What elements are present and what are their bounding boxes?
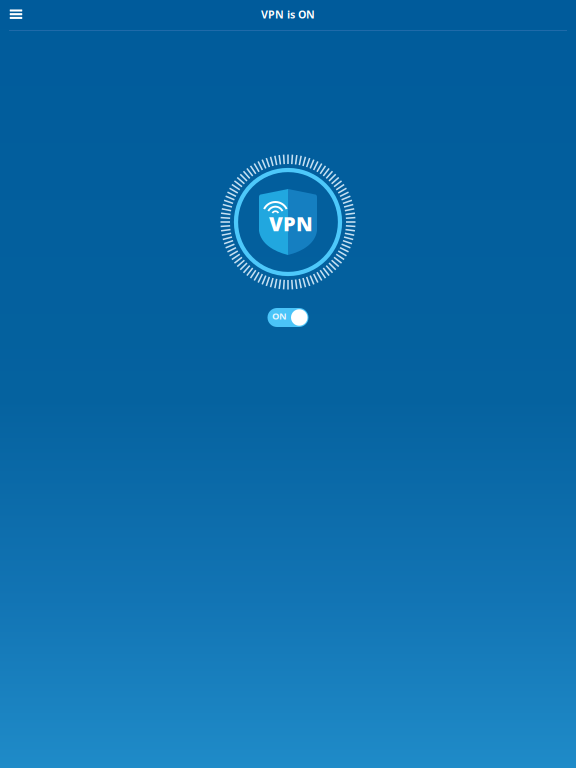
staticText: VPN is ON [261,7,315,21]
staticText: ON [272,310,287,322]
button[interactable]: VPN on/off toggle [267,308,308,327]
button[interactable]: Menu [0,0,31,30]
staticText: VPN [269,210,313,237]
